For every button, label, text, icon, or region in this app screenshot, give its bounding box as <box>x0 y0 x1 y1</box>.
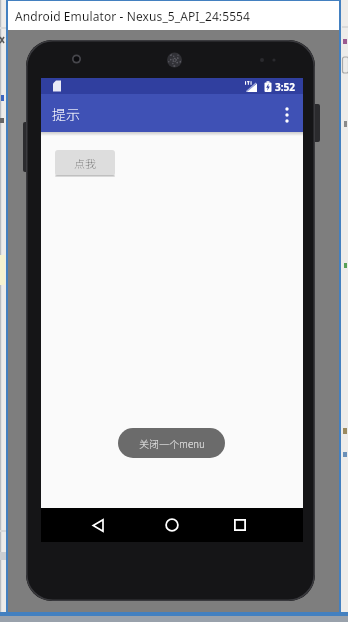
button[interactable]: 点我 <box>55 150 115 176</box>
staticText: 点我 <box>74 155 96 171</box>
staticText: 3:52 <box>275 80 295 94</box>
button[interactable] <box>271 99 303 131</box>
button[interactable] <box>224 509 256 541</box>
staticText: 提示 <box>52 104 80 124</box>
button[interactable] <box>82 509 114 541</box>
staticText: Android Emulator - Nexus_5_API_24:5554 <box>15 8 251 24</box>
staticText: 关闭一个menu <box>139 436 205 450</box>
button[interactable] <box>156 509 188 541</box>
